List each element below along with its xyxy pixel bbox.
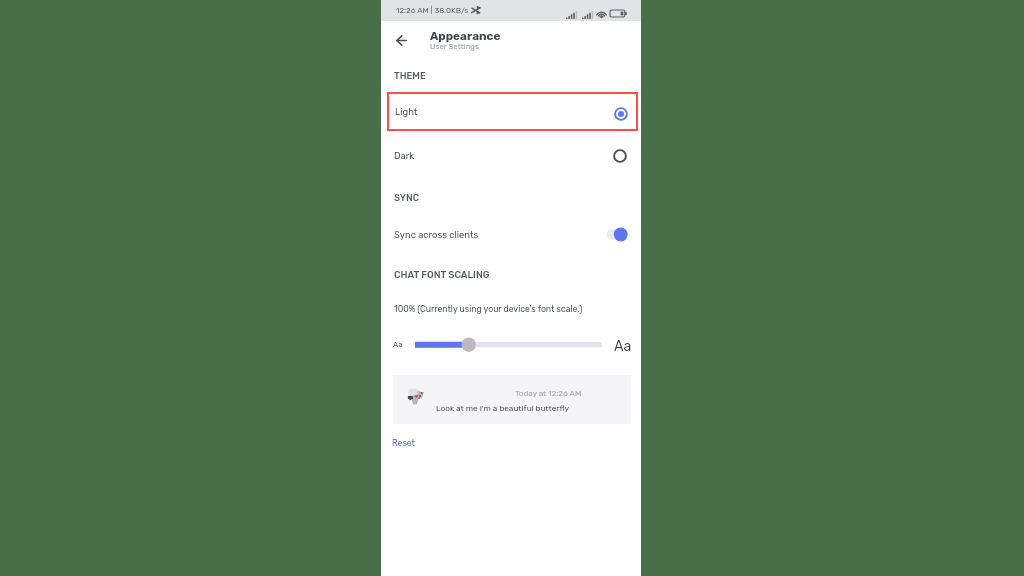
staticText: User Settings (430, 42, 480, 51)
staticText: THEME (394, 70, 426, 81)
button[interactable]: Back (389, 28, 413, 52)
staticText: 100% (Currently using your device's font… (394, 304, 583, 314)
staticText: 12:26 AM | 38.0KB/s (396, 6, 469, 15)
staticText: CHAT FONT SCALING (394, 269, 490, 280)
staticText: Aa (393, 340, 403, 349)
button[interactable]: Dark (381, 137, 641, 174)
staticText: SYNC (394, 192, 420, 203)
staticText: Reset (392, 438, 415, 448)
staticText: Aa (614, 338, 632, 355)
staticText: Today at 12:26 AM (515, 389, 582, 398)
button[interactable]: Sync across clients (381, 222, 641, 246)
button[interactable]: Light (387, 92, 638, 131)
staticText: Light (395, 106, 418, 117)
staticText: Appearance (430, 29, 501, 43)
button[interactable] (413, 336, 604, 354)
staticText: Dark (394, 150, 415, 161)
button[interactable]: Reset (388, 435, 419, 451)
staticText: Look at me I'm a beautiful butterfly (436, 403, 569, 413)
staticText: Sync across clients (394, 229, 479, 240)
